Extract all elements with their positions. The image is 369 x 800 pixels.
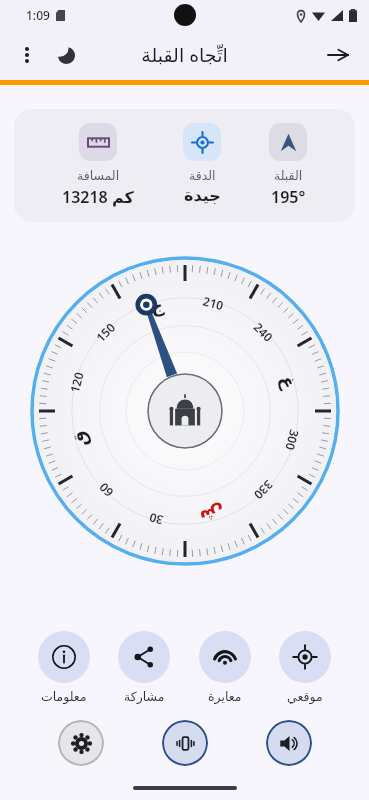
button[interactable]: Vibration <box>162 720 208 766</box>
staticText: اتِّجاه القبلة <box>141 42 228 68</box>
staticText: ش <box>197 502 227 528</box>
staticText: معايرة <box>208 689 242 704</box>
staticText: 60 <box>93 478 118 503</box>
button[interactable]: Dark mode <box>48 37 84 73</box>
staticText: 150 <box>89 317 121 347</box>
staticText: 120 <box>61 366 91 398</box>
staticText: 330 <box>248 475 279 505</box>
staticText: المسافة <box>77 168 120 183</box>
button[interactable]: Qibla compass <box>30 256 340 566</box>
staticText: مشاركة <box>124 689 165 704</box>
staticText: جيدة <box>184 186 221 205</box>
staticText: 240 <box>249 316 279 348</box>
staticText: 30 <box>144 506 168 532</box>
button[interactable]: المسافة <box>14 109 355 222</box>
button[interactable]: More options <box>10 38 44 72</box>
button[interactable]: مشاركة <box>114 631 174 704</box>
button[interactable]: معايرة <box>195 631 255 704</box>
staticText: معلومات <box>41 689 87 704</box>
button[interactable]: Next <box>319 36 357 74</box>
button[interactable]: Sound <box>266 720 312 766</box>
button[interactable]: معلومات <box>34 631 94 704</box>
button[interactable]: Settings <box>58 720 104 766</box>
staticText: موقعي <box>287 689 323 704</box>
staticText: ج <box>147 294 165 318</box>
staticText: 195° <box>271 186 306 208</box>
staticText: 210 <box>198 288 229 318</box>
staticText: غ <box>277 374 300 392</box>
staticText: 300 <box>278 424 308 456</box>
staticText: ق <box>68 428 92 450</box>
staticText: القبلة <box>274 168 303 183</box>
staticText: 13218 كم <box>62 186 134 208</box>
staticText: 1:09 <box>26 7 50 23</box>
button[interactable]: موقعي <box>275 631 335 704</box>
staticText: الدقة <box>189 168 216 183</box>
